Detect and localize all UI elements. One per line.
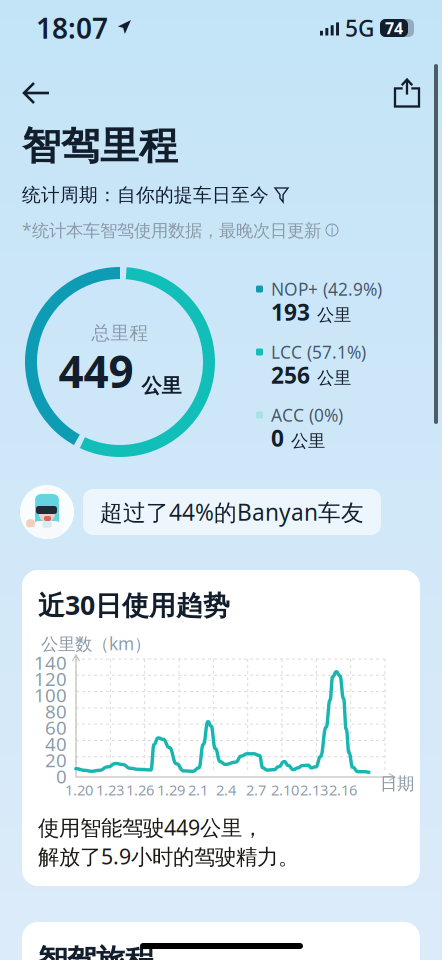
staticText: 超过了44%的Banyan车友 [100,497,364,527]
staticText: *统计本车智驾使用数据，最晚次日更新 [22,218,321,241]
staticText: 1.23 [96,780,124,799]
staticText: 100 [34,683,67,707]
staticText: 193 [271,297,310,327]
staticText: ACC (0%) [271,403,343,426]
button[interactable]: Back [14,70,59,115]
staticText: 1.20 [65,780,93,799]
staticText: 公里 [317,367,351,389]
staticText: 60 [45,715,67,740]
staticText: 2.7 [246,780,266,799]
staticText: 74 [385,17,403,39]
staticText: NOP+ (42.9%) [271,277,382,300]
staticText: 2.13 [300,780,328,799]
staticText: 总里程 [91,321,148,344]
staticText: 2.4 [216,780,236,799]
staticText: 20 [45,748,67,772]
staticText: 140 [34,650,67,675]
button[interactable]: Share [385,69,429,116]
staticText: 80 [45,699,67,724]
staticText: 日期 [380,773,414,794]
staticText: 5G [345,13,374,43]
staticText: 1.29 [157,780,185,799]
staticText: i [330,222,333,238]
staticText: 使用智能驾驶449公里， [38,813,263,841]
staticText: 解放了5.9小时的驾驶精力。 [38,842,299,870]
staticText: 智驾里程 [22,122,178,170]
staticText: 近30日使用趋势 [38,587,230,622]
staticText: 18:07 [36,9,108,47]
staticText: 公里 [141,374,181,398]
staticText: 0 [271,423,284,453]
staticText: 公里数（km） [41,632,151,655]
staticText: 2.1 [188,780,208,799]
staticText: 智驾旅程 [38,942,154,960]
staticText: 2.16 [329,780,357,799]
staticText: 公里 [317,304,351,326]
staticText: 256 [271,360,310,390]
staticText: 1.26 [126,780,154,799]
staticText: 0 [56,764,67,789]
staticText: 40 [45,731,67,756]
staticText: 公里 [291,430,325,452]
staticText: 2.10 [271,780,299,799]
staticText: 统计周期：自你的提车日至今 [22,183,269,206]
staticText: 120 [34,666,67,691]
staticText: 449 [58,342,133,400]
staticText: LCC (57.1%) [271,340,366,363]
